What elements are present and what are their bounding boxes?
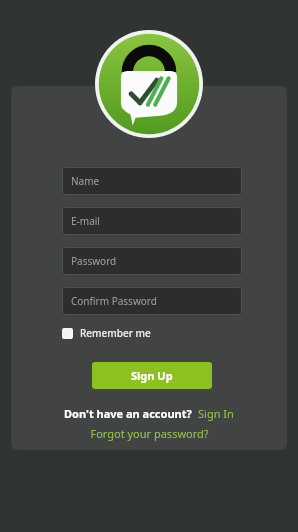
button[interactable]: Remember me	[62, 326, 151, 340]
staticText: E-mail	[71, 214, 100, 228]
staticText: Remember me	[80, 326, 151, 340]
button[interactable]: E-mail	[62, 207, 242, 235]
button[interactable]: Confirm Password	[62, 287, 242, 315]
other: App logo	[95, 30, 203, 138]
button[interactable]: Name	[62, 167, 242, 195]
button[interactable]: Password	[62, 247, 242, 275]
button[interactable]: Sign Up	[92, 362, 212, 389]
staticText: Name	[71, 174, 100, 188]
staticText: Confirm Password	[71, 294, 157, 308]
staticText: Sign In	[198, 406, 234, 421]
button[interactable]: Forgot your password?	[90, 426, 209, 441]
staticText: Don't have an account?	[64, 406, 192, 421]
staticText: Forgot your password?	[90, 426, 209, 441]
button[interactable]: Sign In	[198, 406, 234, 421]
staticText: Password	[71, 254, 117, 268]
staticText: Sign Up	[131, 368, 173, 383]
